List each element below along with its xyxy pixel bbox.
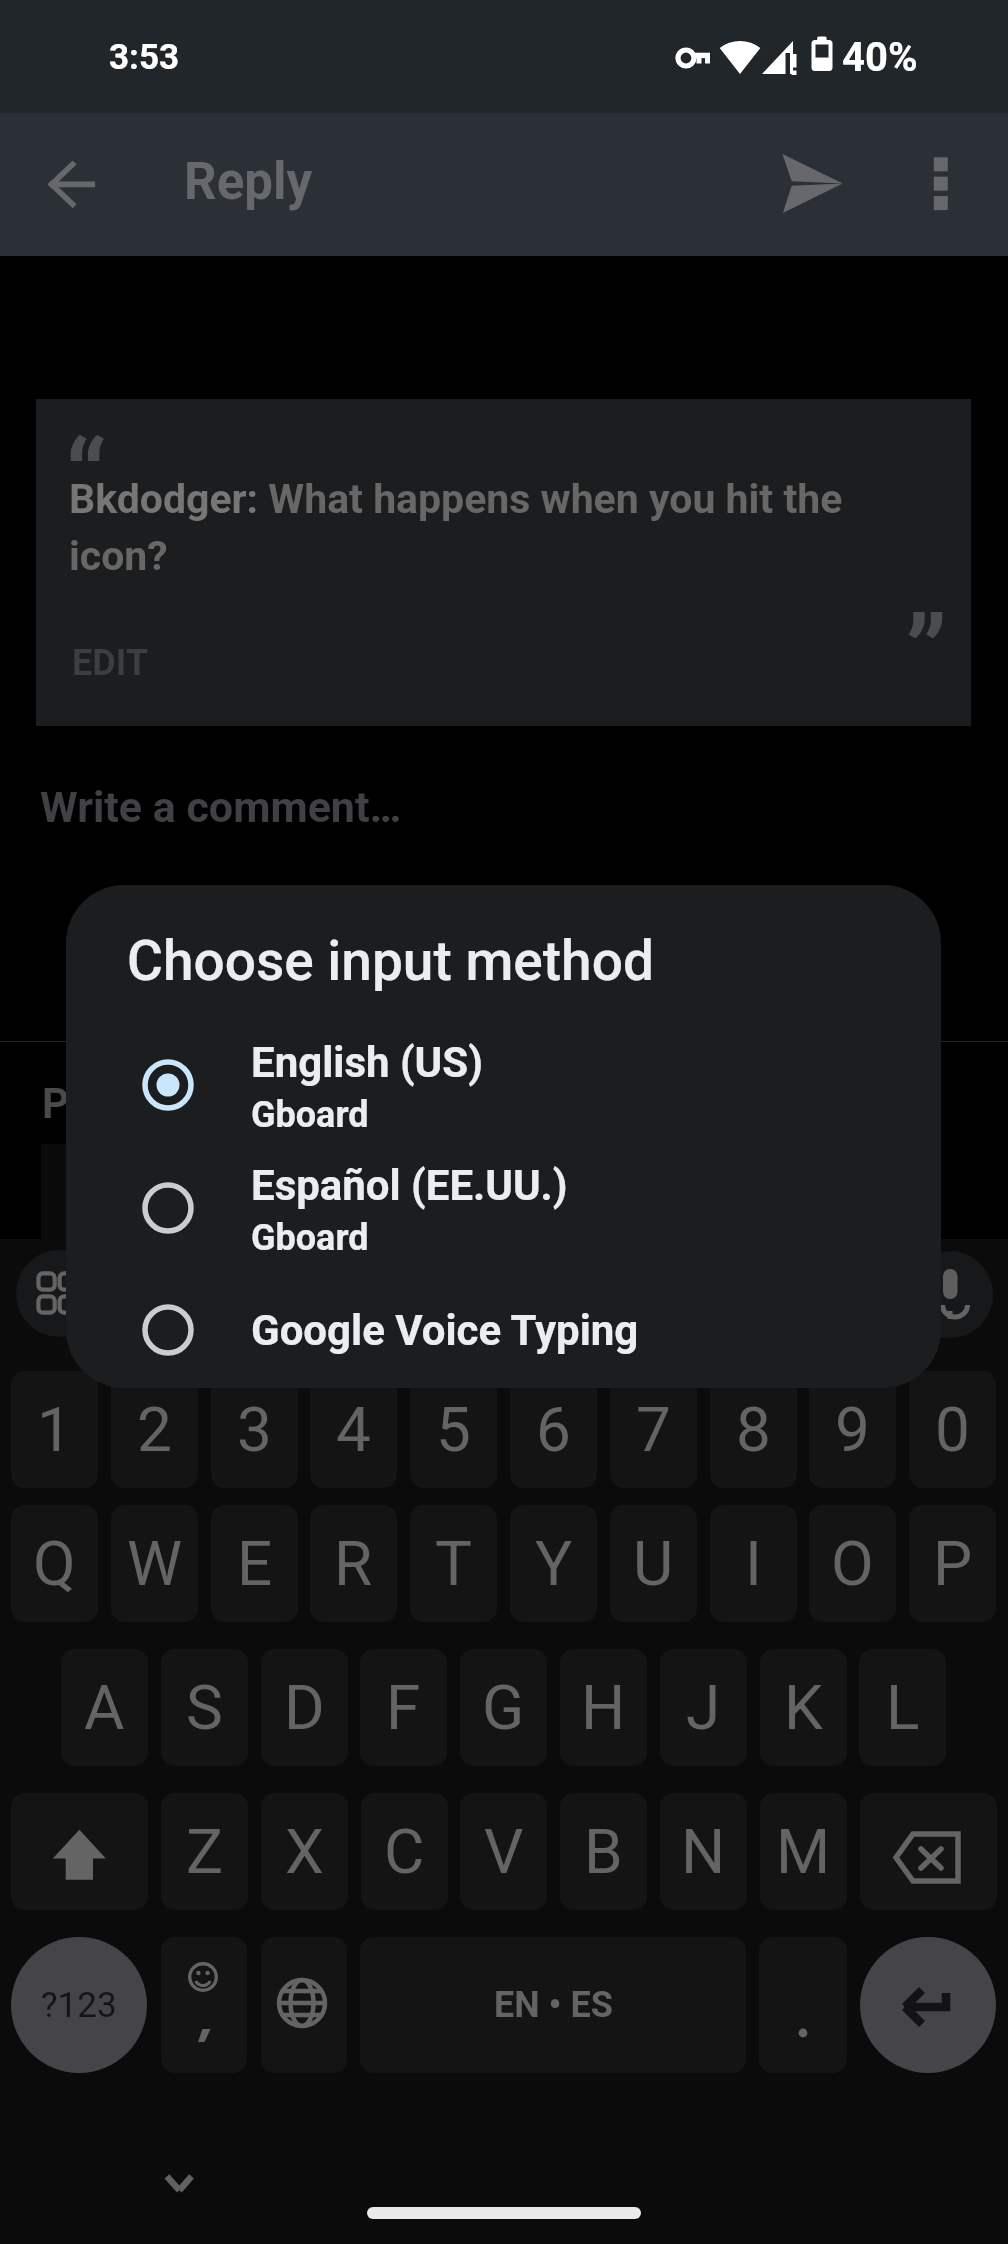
button[interactable]: Z: [161, 1793, 248, 1910]
staticText: Gboard: [251, 1217, 369, 1259]
staticText: R: [334, 1527, 373, 1600]
button[interactable]: 5: [410, 1371, 497, 1488]
staticText: S: [186, 1671, 223, 1744]
staticText: Reply: [184, 152, 313, 212]
staticText: Bkdodger: What happens when you hit the …: [69, 475, 869, 580]
button[interactable]: Enter: [860, 1937, 996, 2073]
button[interactable]: 6: [510, 1371, 597, 1488]
staticText: Photos: [42, 1079, 176, 1128]
button[interactable]: C: [361, 1793, 448, 1910]
button[interactable]: Español (EE.UU.): [66, 1147, 941, 1269]
button[interactable]: D: [261, 1649, 348, 1766]
staticText: 40%: [842, 34, 918, 81]
button[interactable]: Q: [11, 1505, 98, 1622]
staticText: P: [933, 1527, 973, 1600]
staticText: Z: [186, 1815, 224, 1888]
staticText: 2: [137, 1393, 172, 1466]
button[interactable]: EDIT: [72, 642, 148, 684]
button[interactable]: H: [560, 1649, 647, 1766]
button[interactable]: Send: [768, 139, 858, 229]
button[interactable]: “: [36, 399, 971, 726]
staticText: F: [386, 1671, 421, 1744]
staticText: 1: [37, 1393, 72, 1466]
button[interactable]: Shift: [11, 1793, 148, 1910]
staticText: 8: [736, 1393, 771, 1466]
staticText: O: [831, 1527, 874, 1600]
button[interactable]: 9: [809, 1371, 896, 1488]
button[interactable]: B: [560, 1793, 647, 1910]
button[interactable]: M: [760, 1793, 847, 1910]
button[interactable]: Y: [510, 1505, 597, 1622]
staticText: 0: [935, 1393, 970, 1466]
staticText: EN • ES: [494, 1984, 613, 2026]
staticText: E: [237, 1527, 273, 1600]
staticText: Gboard: [251, 1094, 369, 1136]
button[interactable]: 0: [909, 1371, 996, 1488]
button[interactable]: F: [360, 1649, 447, 1766]
button[interactable]: 8: [710, 1371, 797, 1488]
staticText: X: [285, 1815, 324, 1888]
button[interactable]: A: [61, 1649, 148, 1766]
button[interactable]: X: [261, 1793, 348, 1910]
button[interactable]: Voice input: [906, 1251, 993, 1338]
staticText: V: [484, 1815, 524, 1888]
button[interactable]: Backspace: [860, 1793, 997, 1910]
button[interactable]: N: [660, 1793, 747, 1910]
button[interactable]: 7: [610, 1371, 697, 1488]
button[interactable]: O: [809, 1505, 896, 1622]
staticText: ”: [905, 594, 948, 716]
staticText: 6: [536, 1393, 571, 1466]
button[interactable]: U: [610, 1505, 697, 1622]
staticText: 3:53: [109, 37, 180, 78]
button[interactable]: J: [660, 1649, 747, 1766]
button[interactable]: V: [460, 1793, 547, 1910]
button[interactable]: More options: [896, 139, 986, 229]
button[interactable]: Google Voice Typing: [66, 1269, 941, 1388]
button[interactable]: English (US): [66, 1024, 941, 1146]
button[interactable]: P: [909, 1505, 996, 1622]
button[interactable]: Emoji: [161, 1937, 247, 2073]
button[interactable]: E: [211, 1505, 298, 1622]
staticText: J: [686, 1671, 721, 1744]
button[interactable]: R: [310, 1505, 397, 1622]
staticText: Q: [33, 1527, 76, 1600]
staticText: G: [482, 1671, 525, 1744]
button[interactable]: Write a comment…: [40, 782, 402, 832]
staticText: 5: [436, 1393, 471, 1466]
button[interactable]: Back: [25, 139, 115, 229]
button[interactable]: ?123: [11, 1937, 147, 2073]
button[interactable]: 2: [111, 1371, 198, 1488]
button[interactable]: T: [410, 1505, 497, 1622]
button[interactable]: I: [710, 1505, 797, 1622]
staticText: Y: [535, 1527, 573, 1600]
button[interactable]: 3: [211, 1371, 298, 1488]
button[interactable]: K: [760, 1649, 847, 1766]
staticText: B: [584, 1815, 623, 1888]
button[interactable]: Hide keyboard: [140, 2140, 220, 2220]
staticText: Español (EE.UU.): [251, 1161, 568, 1210]
button[interactable]: W: [111, 1505, 198, 1622]
button[interactable]: EN • ES: [360, 1937, 746, 2073]
button[interactable]: Switch keyboard mode: [16, 1250, 103, 1337]
staticText: Choose input method: [127, 929, 654, 993]
button[interactable]: 1: [11, 1371, 98, 1488]
staticText: I: [745, 1527, 762, 1600]
staticText: Google Voice Typing: [251, 1306, 639, 1355]
button[interactable]: 4: [310, 1371, 397, 1488]
staticText: L: [886, 1671, 920, 1744]
button[interactable]: G: [460, 1649, 547, 1766]
staticText: M: [776, 1815, 831, 1888]
staticText: 7: [636, 1393, 671, 1466]
staticText: 3: [237, 1393, 272, 1466]
button[interactable]: Period: [759, 1937, 847, 2073]
staticText: 4: [336, 1393, 371, 1466]
staticText: W: [127, 1527, 183, 1600]
staticText: D: [284, 1671, 325, 1744]
staticText: English (US): [251, 1038, 483, 1087]
staticText: A: [84, 1671, 125, 1744]
button[interactable]: Change language: [261, 1937, 347, 2073]
staticText: “: [65, 418, 107, 540]
button[interactable]: L: [859, 1649, 946, 1766]
button[interactable]: S: [161, 1649, 248, 1766]
staticText: U: [633, 1527, 674, 1600]
